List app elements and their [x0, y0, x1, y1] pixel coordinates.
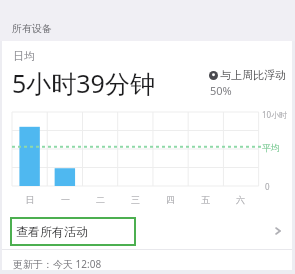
staticText: 10小时 — [262, 109, 288, 120]
staticText: 更新于：今天 12:08 — [13, 257, 102, 270]
staticText: 平均 — [262, 142, 280, 153]
button[interactable]: 查看所有活动 — [2, 215, 292, 247]
other: 查看所有活动 — [273, 226, 283, 236]
staticText: 四 — [153, 194, 188, 205]
staticText: 5小时39分钟 — [12, 66, 155, 100]
staticText: 一 — [48, 194, 83, 205]
staticText: 六 — [223, 194, 258, 205]
staticText: 五 — [188, 194, 223, 205]
staticText: 所有设备 — [12, 22, 52, 35]
other: 浮动 — [209, 71, 218, 80]
staticText: 日均 — [13, 49, 35, 63]
staticText: 日 — [12, 194, 48, 205]
staticText: 二 — [83, 194, 118, 205]
staticText: 查看所有活动 — [16, 224, 88, 239]
staticText: 三 — [118, 194, 153, 205]
staticText: 0 — [265, 181, 270, 192]
staticText: 50% — [210, 83, 232, 98]
staticText: 与上周比浮动 — [220, 68, 286, 82]
button[interactable]: 所有设备 — [0, 0, 295, 41]
